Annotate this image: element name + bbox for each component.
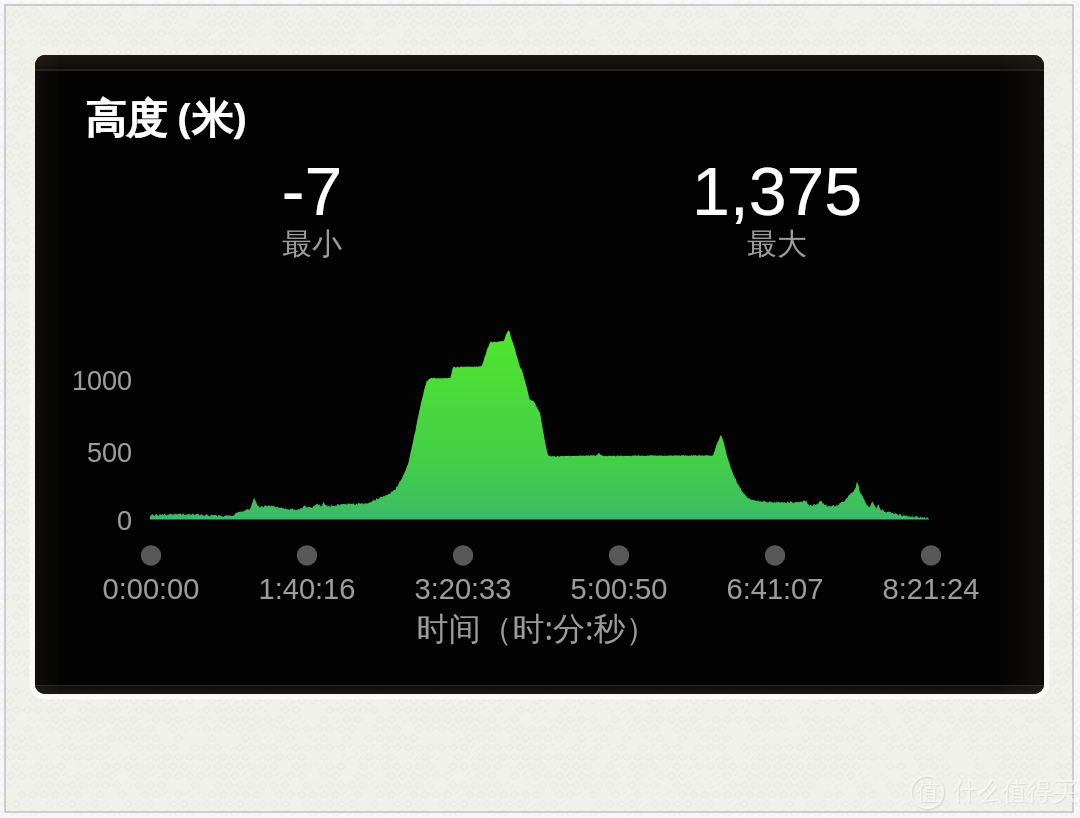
staticText: 什么值得买: [953, 777, 1078, 808]
staticText: 什么值得买: [952, 776, 1077, 807]
staticText: 8:21:24: [831, 573, 1031, 605]
staticText: 6:41:07: [675, 573, 875, 605]
staticText: 值: [917, 779, 940, 808]
staticText: 0: [35, 506, 132, 536]
button[interactable]: Watermark: [0, 0, 1080, 818]
staticText: 最小: [132, 225, 492, 263]
staticText: 1000: [35, 366, 132, 396]
staticText: -7: [132, 153, 492, 229]
staticText: 1,375: [597, 153, 957, 229]
staticText: 最大: [597, 225, 957, 263]
staticText: 0:00:00: [51, 573, 251, 605]
staticText: 5:00:50: [519, 573, 719, 605]
staticText: 高度 (米): [85, 89, 247, 145]
button[interactable]: 高度 (米): [35, 55, 1044, 694]
staticText: 500: [35, 438, 132, 468]
staticText: 1:40:16: [207, 573, 407, 605]
staticText: 3:20:33: [363, 573, 563, 605]
staticText: 时间（时:分:秒）: [287, 606, 787, 650]
staticText: 值: [916, 778, 939, 807]
